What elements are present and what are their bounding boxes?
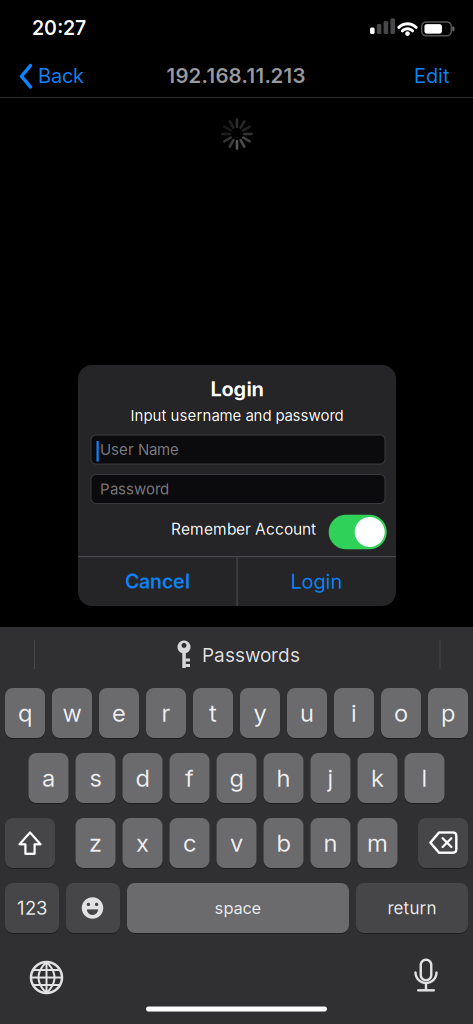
- button[interactable]: c: [169, 818, 209, 868]
- staticText: Edit: [414, 64, 450, 88]
- button[interactable]: Dictation: [397, 946, 453, 1002]
- staticText: Login: [210, 377, 263, 401]
- staticText: k: [371, 763, 384, 792]
- button[interactable]: Edit: [380, 54, 450, 98]
- button[interactable]: w: [52, 688, 92, 738]
- button[interactable]: q: [5, 688, 45, 738]
- button[interactable]: k: [357, 753, 397, 803]
- staticText: User Name: [100, 440, 179, 458]
- button[interactable]: t: [193, 688, 233, 738]
- button[interactable]: space: [127, 883, 349, 933]
- button[interactable]: l: [404, 753, 444, 803]
- button[interactable]: s: [75, 753, 115, 803]
- staticText: j: [327, 763, 333, 792]
- staticText: r: [161, 698, 170, 727]
- staticText: 20:27: [32, 16, 86, 40]
- staticText: u: [300, 698, 314, 727]
- button[interactable]: g: [216, 753, 256, 803]
- button[interactable]: d: [122, 753, 162, 803]
- staticText: d: [135, 763, 149, 792]
- button[interactable]: return: [356, 883, 468, 933]
- staticText: Passwords: [202, 643, 300, 666]
- button[interactable]: v: [216, 818, 256, 868]
- button[interactable]: Passwords: [202, 632, 332, 677]
- button[interactable]: h: [263, 753, 303, 803]
- staticText: 192.168.11.213: [166, 63, 305, 88]
- staticText: Input username and password: [130, 406, 343, 424]
- button[interactable]: Emoji: [66, 883, 120, 933]
- button[interactable]: u: [287, 688, 327, 738]
- button[interactable]: m: [357, 818, 397, 868]
- button[interactable]: i: [334, 688, 374, 738]
- staticText: Password: [100, 480, 169, 498]
- staticText: b: [276, 828, 290, 857]
- button[interactable]: j: [310, 753, 350, 803]
- button[interactable]: p: [428, 688, 468, 738]
- staticText: n: [323, 828, 337, 857]
- button[interactable]: b: [263, 818, 303, 868]
- button[interactable]: n: [310, 818, 350, 868]
- button[interactable]: Delete: [418, 818, 468, 868]
- staticText: return: [387, 898, 436, 918]
- staticText: z: [89, 828, 102, 857]
- staticText: Back: [38, 64, 84, 88]
- staticText: w: [62, 698, 81, 727]
- button[interactable]: 123: [5, 883, 59, 933]
- staticText: Cancel: [125, 570, 190, 593]
- staticText: v: [230, 828, 243, 857]
- staticText: space: [214, 898, 261, 918]
- button[interactable]: a: [28, 753, 68, 803]
- staticText: f: [185, 763, 194, 792]
- staticText: p: [441, 698, 455, 727]
- staticText: y: [253, 698, 266, 727]
- button[interactable]: Shift: [5, 818, 55, 868]
- button[interactable]: Back: [38, 54, 110, 98]
- staticText: 123: [17, 897, 47, 919]
- button[interactable]: Next keyboard: [19, 949, 75, 1005]
- button[interactable]: e: [99, 688, 139, 738]
- staticText: Remember Account: [171, 520, 316, 538]
- staticText: o: [394, 698, 408, 727]
- staticText: l: [421, 763, 427, 792]
- button[interactable]: o: [381, 688, 421, 738]
- staticText: e: [112, 698, 126, 727]
- staticText: t: [209, 698, 217, 727]
- staticText: q: [18, 698, 32, 727]
- staticText: Login: [290, 569, 342, 594]
- staticText: x: [136, 828, 149, 857]
- staticText: g: [229, 763, 243, 792]
- button[interactable]: z: [75, 818, 115, 868]
- staticText: h: [276, 763, 290, 792]
- button[interactable]: x: [122, 818, 162, 868]
- button[interactable]: Cancel: [78, 557, 236, 606]
- button[interactable]: r: [146, 688, 186, 738]
- staticText: s: [89, 763, 101, 792]
- staticText: i: [351, 698, 357, 727]
- staticText: c: [183, 828, 196, 857]
- button[interactable]: Login: [237, 557, 395, 606]
- staticText: m: [367, 828, 388, 857]
- button[interactable]: y: [240, 688, 280, 738]
- button[interactable]: Remember Account: [329, 515, 387, 549]
- staticText: a: [42, 763, 55, 792]
- button[interactable]: f: [169, 753, 209, 803]
